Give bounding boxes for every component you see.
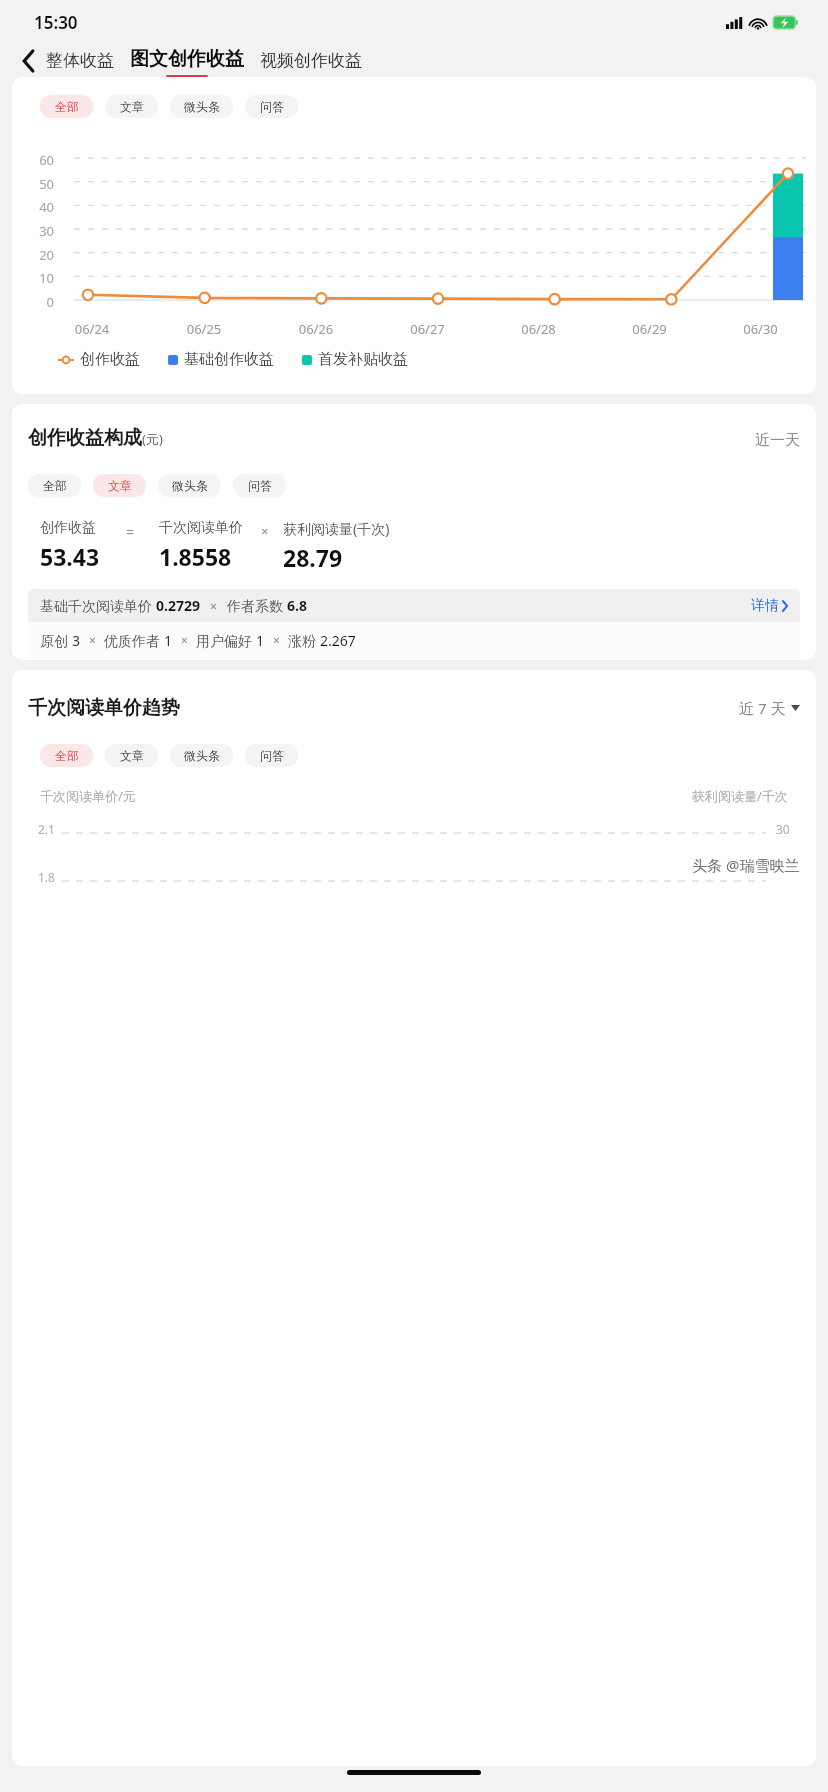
staticText: = xyxy=(126,522,135,541)
staticText: 全部 xyxy=(55,99,79,114)
staticText: 2.267 xyxy=(320,631,356,650)
staticText: 详情 xyxy=(751,597,779,615)
staticText: 全部 xyxy=(43,478,67,493)
staticText: 06/26 xyxy=(260,320,372,338)
staticText: × xyxy=(261,522,269,540)
staticText: 千次阅读单价趋势 xyxy=(28,696,180,720)
staticText: 创作收益构成 xyxy=(28,426,142,450)
button[interactable]: 全部 xyxy=(40,95,93,118)
button[interactable]: 近一天 xyxy=(755,431,800,450)
staticText: 全部 xyxy=(55,748,79,763)
button[interactable]: 微头条 xyxy=(158,474,221,497)
button[interactable]: 问答 xyxy=(233,474,286,497)
staticText: 创作收益 xyxy=(80,350,140,369)
staticText: 2.1 xyxy=(38,821,55,837)
staticText: 视频创作收益 xyxy=(260,50,362,71)
staticText: 文章 xyxy=(120,748,144,763)
staticText: × xyxy=(181,632,188,648)
staticText: 作者系数 xyxy=(227,596,287,615)
staticText: 0.2729 xyxy=(156,596,200,615)
staticText: 获利阅读量(千次) xyxy=(283,519,390,538)
staticText: 获利阅读量/千次 xyxy=(692,787,788,805)
button[interactable]: 微头条 xyxy=(170,744,233,767)
button[interactable]: 全部 xyxy=(28,474,81,497)
staticText: 30 xyxy=(776,821,790,837)
staticText: 6.8 xyxy=(287,596,307,615)
staticText: 微头条 xyxy=(184,748,220,763)
staticText: 1 xyxy=(164,631,173,650)
button[interactable]: 全部 xyxy=(40,744,93,767)
staticText: 1.8558 xyxy=(159,541,232,572)
staticText: 基础千次阅读单价 xyxy=(40,596,156,615)
staticText: 15:30 xyxy=(34,11,78,34)
staticText: 近 7 天 xyxy=(739,698,786,718)
staticText: × xyxy=(89,632,96,648)
button[interactable]: 视频创作收益 xyxy=(260,44,362,77)
staticText: 文章 xyxy=(108,478,132,493)
button[interactable]: 基础千次阅读单价 xyxy=(28,589,800,622)
staticText: 30 xyxy=(30,222,54,240)
staticText: × xyxy=(210,598,217,614)
staticText: 原创 xyxy=(40,631,72,650)
staticText: 06/25 xyxy=(148,320,260,338)
staticText: 用户偏好 xyxy=(196,631,256,650)
staticText: 60 xyxy=(30,151,54,169)
staticText: 06/28 xyxy=(483,320,594,338)
staticText: 问答 xyxy=(260,748,284,763)
staticText: 首发补贴收益 xyxy=(318,350,408,369)
button[interactable]: 图文创作收益 xyxy=(130,44,244,77)
staticText: 06/24 xyxy=(36,320,148,338)
staticText: (元) xyxy=(142,430,163,448)
staticText: 06/30 xyxy=(705,320,816,338)
staticText: 问答 xyxy=(248,478,272,493)
button[interactable]: 整体收益 xyxy=(46,44,114,77)
staticText: × xyxy=(273,632,280,648)
staticText: 10 xyxy=(30,269,54,287)
button[interactable]: 问答 xyxy=(245,744,298,767)
staticText: 千次阅读单价/元 xyxy=(40,787,136,805)
staticText: 文章 xyxy=(120,99,144,114)
staticText: 近一天 xyxy=(755,431,800,450)
button[interactable]: Back xyxy=(12,44,46,77)
staticText: 06/29 xyxy=(594,320,705,338)
staticText: 图文创作收益 xyxy=(130,47,244,71)
staticText: 0 xyxy=(30,293,54,311)
staticText: 涨粉 xyxy=(288,631,320,650)
staticText: 整体收益 xyxy=(46,50,114,71)
staticText: 1 xyxy=(256,631,265,650)
staticText: 基础创作收益 xyxy=(184,350,274,369)
staticText: 优质作者 xyxy=(104,631,164,650)
staticText: 53.43 xyxy=(40,541,100,572)
button[interactable]: 近 7 天 xyxy=(739,698,800,718)
staticText: 头条 @瑞雪映兰 xyxy=(692,855,800,875)
staticText: 千次阅读单价 xyxy=(159,519,243,537)
staticText: 28.79 xyxy=(283,542,343,573)
staticText: 40 xyxy=(30,198,54,216)
staticText: 50 xyxy=(30,175,54,193)
staticText: 创作收益 xyxy=(40,519,96,537)
staticText: 微头条 xyxy=(184,99,220,114)
staticText: 20 xyxy=(30,246,54,264)
button[interactable]: 文章 xyxy=(93,474,146,497)
staticText: 06/27 xyxy=(372,320,483,338)
button[interactable]: 文章 xyxy=(105,95,158,118)
staticText: 1.8 xyxy=(38,869,55,885)
button[interactable]: 微头条 xyxy=(170,95,233,118)
button[interactable]: 文章 xyxy=(105,744,158,767)
staticText: 问答 xyxy=(260,99,284,114)
staticText: 3 xyxy=(72,631,81,650)
staticText: 微头条 xyxy=(172,478,208,493)
button[interactable]: 问答 xyxy=(245,95,298,118)
